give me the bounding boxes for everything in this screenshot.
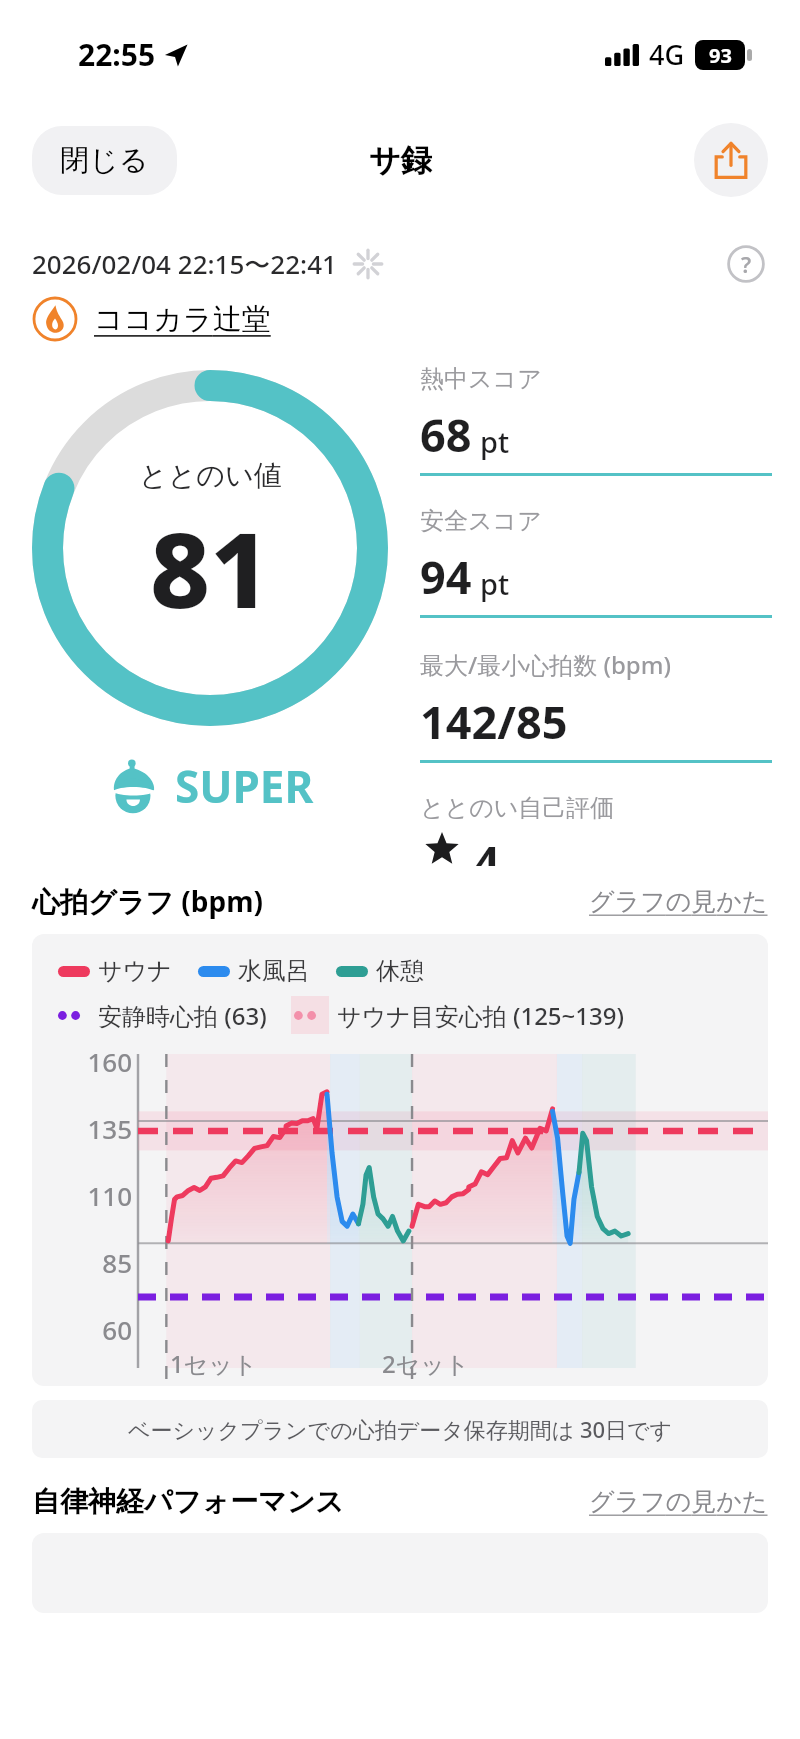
staticText: 熱中スコア (420, 364, 542, 394)
button[interactable]: 熱中スコア (420, 364, 772, 506)
staticText: 22:55 (78, 34, 156, 75)
staticText: 1セット (170, 1347, 258, 1380)
button[interactable]: Share (694, 123, 768, 197)
button[interactable]: 最大/最小心拍数 (bpm) (420, 648, 772, 793)
staticText: サウナ (98, 956, 172, 986)
staticText: 休憩 (376, 956, 424, 986)
staticText: グラフの見かた (589, 1486, 768, 1517)
button[interactable]: 安全スコア (420, 506, 772, 648)
staticText: 81 (150, 497, 271, 639)
staticText: 4G (649, 36, 685, 73)
staticText: 4 (474, 831, 500, 866)
staticText: pt (480, 422, 510, 461)
staticText: 110 (87, 1178, 132, 1213)
staticText: 閉じる (60, 142, 149, 179)
button[interactable]: グラフの見かた (589, 1486, 768, 1517)
button[interactable]: グラフの見かた (589, 886, 768, 917)
staticText: 心拍グラフ (bpm) (32, 882, 263, 920)
staticText: 135 (87, 1111, 132, 1146)
staticText: ココカラ辻堂 (94, 301, 271, 338)
staticText: pt (480, 564, 510, 603)
staticText: 水風呂 (238, 956, 310, 986)
button[interactable]: ととのい自己評価 (420, 793, 772, 866)
button[interactable]: Help (724, 242, 768, 286)
staticText: 最大/最小心拍数 (bpm) (420, 648, 671, 681)
staticText: 160 (87, 1044, 132, 1079)
staticText: 85 (102, 1245, 132, 1280)
staticText: 94 (420, 546, 472, 607)
staticText: グラフの見かた (589, 886, 768, 917)
staticText: ととのい自己評価 (420, 793, 615, 823)
staticText: 93 (709, 42, 732, 69)
staticText: ? (741, 249, 752, 279)
staticText: ととのい値 (139, 458, 282, 493)
staticText: 安静時心拍 (63) (98, 999, 267, 1032)
button[interactable]: 閉じる (32, 126, 177, 195)
staticText: 2セット (382, 1347, 470, 1380)
staticText: 自律神経パフォーマンス (32, 1484, 344, 1519)
staticText: 60 (102, 1312, 132, 1347)
staticText: 142/85 (420, 691, 568, 752)
staticText: 安全スコア (420, 506, 542, 536)
button[interactable]: ココカラ辻堂 (32, 296, 768, 342)
staticText: 68 (420, 404, 472, 465)
staticText: ベーシックプランでの心拍データ保存期間は 30日です (128, 1414, 673, 1444)
staticText: 2026/02/04 22:15〜22:41 (32, 246, 337, 282)
staticText: サウナ目安心拍 (125~139) (337, 999, 624, 1032)
staticText: サ録 (369, 141, 432, 180)
staticText: SUPER (175, 756, 314, 816)
